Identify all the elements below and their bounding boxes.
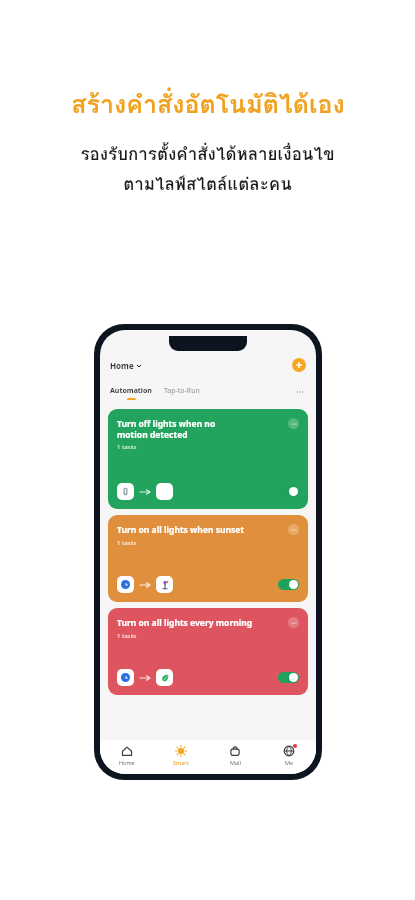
button[interactable]: Enable automation: [278, 579, 299, 590]
button[interactable]: Turn on all lights every morning: [108, 608, 308, 695]
staticText: สร้างคำสั่งอัตโนมัติได้เอง: [71, 84, 345, 124]
button[interactable]: Enable automation: [278, 672, 299, 683]
staticText: Home: [119, 759, 135, 766]
staticText: Turn on all lights every morning: [117, 617, 284, 629]
button[interactable]: Turn off lights when no motion detected: [108, 409, 308, 509]
button[interactable]: Card menu: [288, 418, 299, 429]
staticText: Mall: [230, 759, 241, 766]
button[interactable]: Automation: [110, 386, 152, 400]
staticText: รองรับการตั้งคำสั่งได้หลายเงื่อนไข: [80, 140, 335, 167]
staticText: Smart: [173, 759, 189, 766]
button[interactable]: Card menu: [288, 524, 299, 535]
button[interactable]: Home: [100, 745, 154, 774]
staticText: Turn on all lights when sunset: [117, 524, 284, 536]
button[interactable]: Me: [262, 745, 316, 774]
button[interactable]: More options: [294, 386, 306, 398]
staticText: Home: [110, 360, 134, 371]
button[interactable]: Turn on all lights when sunset: [108, 515, 308, 602]
button[interactable]: Add automation: [292, 358, 306, 372]
button[interactable]: Mall: [208, 745, 262, 774]
staticText: 1 tasks: [117, 539, 137, 547]
button[interactable]: Smart: [154, 745, 208, 774]
button[interactable]: Tap-to-Run: [164, 386, 200, 396]
staticText: 1 tasks: [117, 632, 137, 640]
staticText: 1 tasks: [117, 443, 137, 451]
staticText: Automation: [110, 386, 152, 396]
staticText: Me: [285, 759, 294, 766]
staticText: Turn off lights when no motion detected: [117, 418, 284, 440]
staticText: ตามไลฟ์สไตล์แต่ละคน: [123, 170, 292, 197]
button[interactable]: Home: [110, 360, 142, 371]
button[interactable]: Enable automation: [278, 486, 299, 497]
button[interactable]: Card menu: [288, 617, 299, 628]
